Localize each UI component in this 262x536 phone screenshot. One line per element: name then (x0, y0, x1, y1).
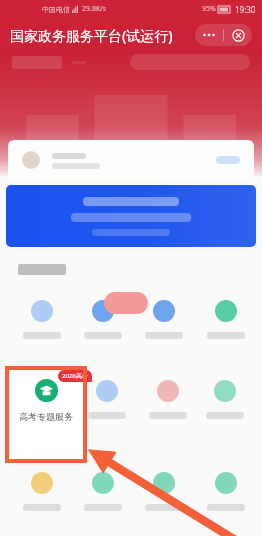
button[interactable] (92, 472, 114, 494)
button[interactable] (92, 300, 114, 322)
staticText: 中国电信 (42, 5, 70, 14)
staticText: 29.8K/s (82, 4, 107, 14)
button[interactable]: 高考专题服务 (5, 366, 87, 463)
button[interactable] (215, 300, 237, 322)
staticText: 高考专题服务 (19, 411, 73, 422)
button[interactable]: Close (224, 24, 252, 46)
button[interactable] (214, 380, 236, 402)
button[interactable] (31, 472, 53, 494)
staticText: 2020高考 (62, 372, 88, 380)
staticText: 95% (202, 4, 216, 14)
button[interactable] (157, 380, 179, 402)
button[interactable] (96, 380, 118, 402)
button[interactable] (153, 300, 175, 322)
button[interactable]: More options (195, 24, 223, 46)
button[interactable] (153, 472, 175, 494)
button[interactable] (215, 472, 237, 494)
button[interactable] (6, 185, 256, 247)
button[interactable] (31, 300, 53, 322)
button[interactable] (8, 140, 254, 180)
staticText: 国家政务服务平台(试运行) (10, 26, 173, 45)
staticText: 19:30 (235, 4, 256, 15)
